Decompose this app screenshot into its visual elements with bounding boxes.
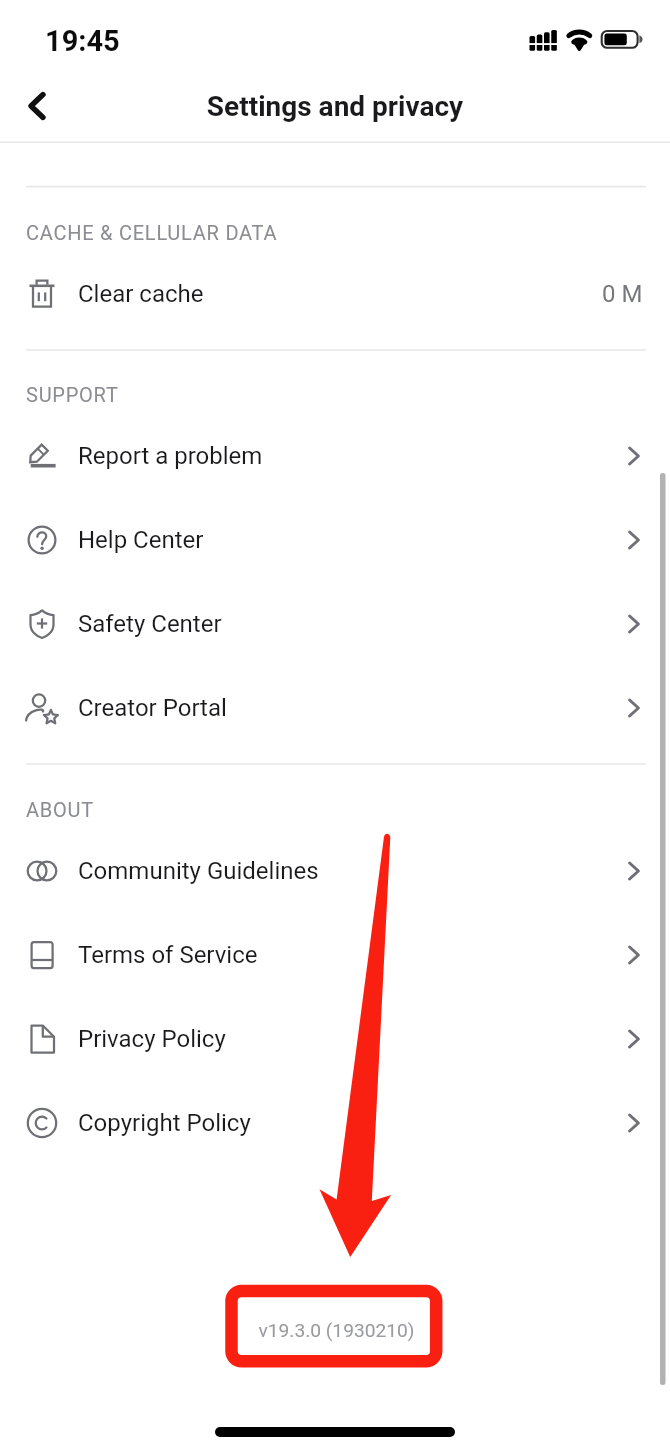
button[interactable]: Privacy Policy <box>0 997 670 1081</box>
button[interactable]: Clear cache <box>0 252 670 336</box>
staticText: ABOUT <box>26 798 94 821</box>
button[interactable]: Terms of Service <box>0 913 670 997</box>
staticText: Copyright Policy <box>78 1109 251 1137</box>
staticText: SUPPORT <box>26 383 119 406</box>
staticText: Privacy Policy <box>78 1025 226 1053</box>
staticText: CACHE & CELLULAR DATA <box>26 221 278 244</box>
staticText: Creator Portal <box>78 694 227 722</box>
button[interactable]: Community Guidelines <box>0 829 670 913</box>
staticText: Help Center <box>78 526 204 554</box>
button[interactable]: Help Center <box>0 498 670 582</box>
staticText: Safety Center <box>78 610 222 638</box>
staticText: Terms of Service <box>78 941 258 969</box>
staticText: Settings and privacy <box>0 90 670 123</box>
staticText: Clear cache <box>78 280 204 308</box>
button[interactable]: Safety Center <box>0 582 670 666</box>
button[interactable]: Report a problem <box>0 414 670 498</box>
button[interactable]: Back <box>9 78 65 134</box>
staticText: 19:45 <box>45 24 120 58</box>
staticText: Report a problem <box>78 442 263 470</box>
staticText: 0 M <box>602 280 643 308</box>
button[interactable]: Creator Portal <box>0 666 670 750</box>
button[interactable]: Copyright Policy <box>0 1081 670 1165</box>
staticText: v19.3.0 (1930210) <box>258 1319 415 1342</box>
button[interactable]: v19.3.0 (1930210) <box>239 1308 433 1352</box>
staticText: Community Guidelines <box>78 857 319 885</box>
